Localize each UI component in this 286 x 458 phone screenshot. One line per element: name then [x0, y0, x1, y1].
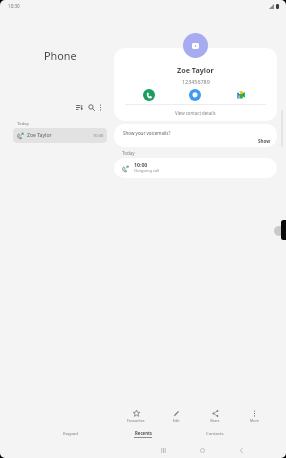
- staticText: Zoe Taylor: [177, 65, 214, 75]
- staticText: Phone: [44, 48, 77, 63]
- button[interactable]: 10:00: [114, 158, 277, 178]
- button[interactable]: Home: [193, 441, 211, 458]
- button[interactable]: Video call: [235, 89, 247, 101]
- button[interactable]: Share: [199, 409, 231, 423]
- staticText: Recents: [135, 430, 152, 436]
- button[interactable]: Search: [85, 101, 98, 114]
- button[interactable]: Contacts: [195, 430, 235, 436]
- button[interactable]: Zoe Taylor: [13, 128, 107, 143]
- staticText: 10:30: [93, 133, 104, 139]
- button[interactable]: View contact details: [114, 104, 277, 121]
- button[interactable]: More options: [94, 101, 107, 114]
- button[interactable]: Edit: [160, 409, 192, 423]
- staticText: 10:00: [134, 161, 148, 168]
- staticText: Outgoing call: [134, 168, 160, 173]
- staticText: Show: [258, 138, 271, 144]
- staticText: 10:30: [8, 3, 20, 9]
- staticText: Favourites: [127, 418, 145, 423]
- button[interactable]: Message: [189, 89, 201, 101]
- button[interactable]: Call: [143, 89, 155, 101]
- staticText: Zoe Taylor: [27, 132, 52, 139]
- staticText: Today: [17, 120, 29, 126]
- staticText: More: [250, 418, 259, 423]
- button[interactable]: Recents: [154, 441, 172, 458]
- button[interactable]: More: [238, 409, 270, 423]
- staticText: Share: [210, 418, 220, 423]
- button[interactable]: Show: [258, 138, 271, 144]
- staticText: Keypad: [63, 430, 78, 436]
- button[interactable]: Sort: [73, 101, 86, 114]
- staticText: Today: [122, 150, 135, 156]
- staticText: 123456789: [182, 78, 210, 85]
- staticText: Edit: [173, 418, 180, 423]
- staticText: View contact details: [175, 110, 216, 116]
- button[interactable]: Favourites: [120, 409, 152, 423]
- staticText: Contacts: [206, 430, 224, 436]
- staticText: Show your voicemails?: [123, 130, 171, 136]
- button[interactable]: Keypad: [50, 430, 90, 436]
- button[interactable]: Back: [232, 441, 250, 458]
- button[interactable]: Recents: [123, 430, 163, 438]
